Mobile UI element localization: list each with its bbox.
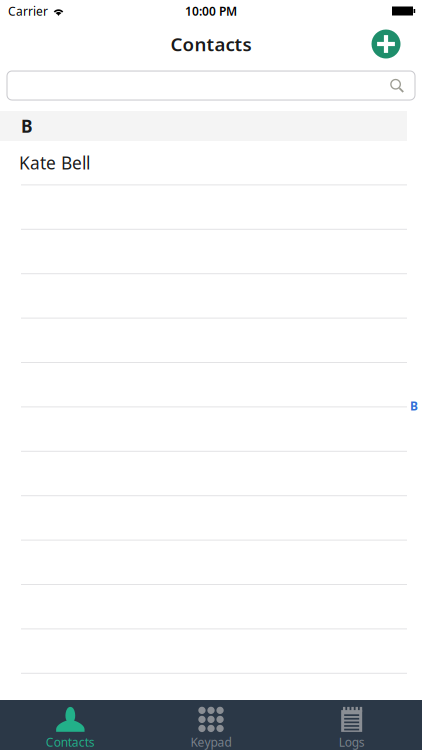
button[interactable]: Search xyxy=(7,71,415,100)
button[interactable] xyxy=(0,452,422,496)
staticText: Contacts xyxy=(46,734,95,750)
button[interactable]: Kate Bell xyxy=(0,141,422,185)
staticText: B xyxy=(21,114,33,137)
staticText: Logs xyxy=(339,734,365,750)
button[interactable] xyxy=(0,185,422,230)
staticText: Keypad xyxy=(190,734,231,750)
button[interactable] xyxy=(0,230,422,274)
staticText: 10:00 PM xyxy=(185,3,237,19)
button[interactable]: Keypad xyxy=(141,700,281,750)
button[interactable] xyxy=(0,319,422,363)
staticText: Carrier xyxy=(8,3,48,19)
button[interactable] xyxy=(0,629,422,674)
staticText: B xyxy=(410,398,418,414)
button[interactable] xyxy=(0,407,422,452)
staticText: Contacts xyxy=(170,32,251,56)
button[interactable] xyxy=(0,541,422,585)
button[interactable]: Contacts xyxy=(0,700,141,750)
button[interactable] xyxy=(0,363,422,407)
staticText: Kate Bell xyxy=(19,151,90,174)
button[interactable]: Logs xyxy=(281,700,422,750)
button[interactable]: Add contact xyxy=(364,22,408,66)
